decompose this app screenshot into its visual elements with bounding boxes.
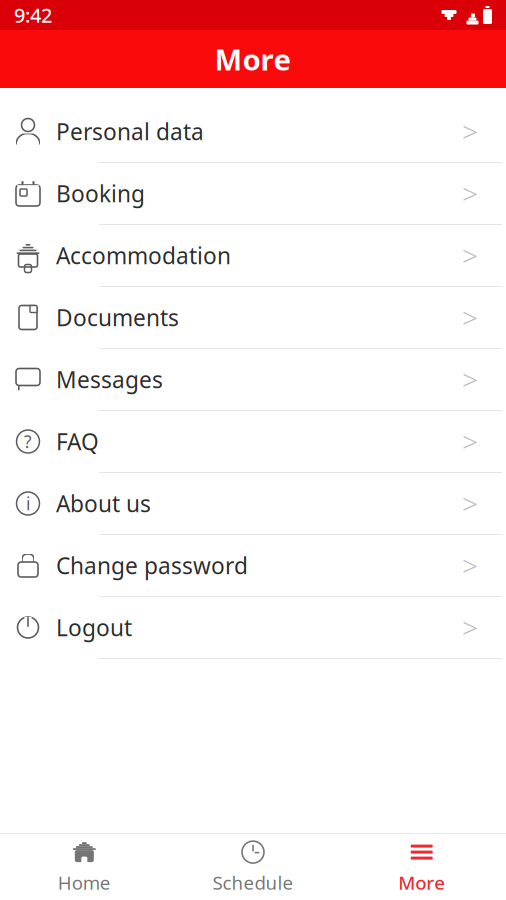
staticText: > (462, 175, 478, 212)
staticText: About us (56, 488, 151, 518)
button[interactable]: More (337, 829, 506, 900)
button[interactable]: Change password (0, 535, 506, 597)
button[interactable]: Schedule (169, 829, 337, 900)
staticText: More (214, 39, 291, 78)
staticText: > (462, 547, 478, 584)
button[interactable]: ? (0, 411, 506, 473)
staticText: ? (24, 430, 32, 453)
button[interactable]: Documents (0, 287, 506, 349)
button[interactable]: Personal data (0, 101, 506, 163)
button[interactable]: i (0, 473, 506, 535)
staticText: > (462, 609, 478, 646)
button[interactable]: Booking (0, 163, 506, 225)
staticText: Schedule (212, 870, 293, 895)
staticText: > (462, 299, 478, 336)
staticText: FAQ (56, 426, 99, 456)
staticText: Documents (56, 302, 179, 332)
staticText: > (462, 423, 478, 460)
staticText: More (398, 870, 445, 895)
button[interactable]: Accommodation (0, 225, 506, 287)
button[interactable]: Home (0, 829, 169, 900)
staticText: > (462, 113, 478, 150)
staticText: Booking (56, 178, 145, 208)
staticText: > (462, 361, 478, 398)
staticText: > (462, 237, 478, 274)
staticText: Personal data (56, 116, 204, 146)
staticText: i (26, 492, 30, 515)
staticText: Change password (56, 550, 248, 580)
staticText: Messages (56, 364, 163, 394)
staticText: > (462, 485, 478, 522)
staticText: Logout (56, 612, 132, 642)
staticText: Home (58, 870, 111, 895)
staticText: 9:42 (14, 2, 52, 28)
staticText: Accommodation (56, 240, 231, 270)
button[interactable]: Messages (0, 349, 506, 411)
button[interactable]: Logout (0, 597, 506, 659)
